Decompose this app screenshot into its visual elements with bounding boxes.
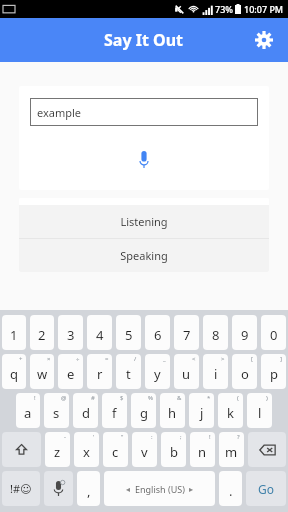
staticText: 73%: [215, 3, 233, 15]
staticText: -: [64, 433, 66, 441]
staticText: :: [151, 433, 153, 441]
staticText: e: [67, 365, 75, 383]
button[interactable]: ×: [30, 354, 54, 389]
button[interactable]: =: [87, 354, 112, 389]
button[interactable]: %: [131, 393, 156, 428]
staticText: ": [121, 433, 124, 441]
button[interactable]: *: [189, 393, 214, 428]
staticText: ◂: [126, 485, 131, 494]
button[interactable]: ): [247, 393, 272, 428]
staticText: @: [61, 394, 67, 402]
staticText: Speaking: [120, 248, 168, 263]
button[interactable]: 2: [30, 315, 54, 350]
button[interactable]: #: [73, 393, 98, 428]
button[interactable]: Listening: [19, 205, 269, 238]
staticText: t: [126, 365, 131, 383]
staticText: v: [141, 443, 148, 461]
button[interactable]: Symbols: [2, 471, 40, 506]
button[interactable]: ÷: [58, 354, 83, 389]
staticText: <: [192, 355, 196, 363]
button[interactable]: $: [102, 393, 127, 428]
staticText: y: [154, 365, 161, 383]
staticText: 3: [67, 326, 75, 344]
staticText: h: [168, 404, 177, 422]
button[interactable]: ,: [77, 471, 100, 506]
staticText: 7: [183, 326, 191, 344]
staticText: English (US): [135, 483, 185, 495]
button[interactable]: ]: [261, 354, 286, 389]
staticText: 1: [10, 326, 18, 344]
staticText: w: [37, 365, 48, 383]
button[interactable]: :: [132, 432, 157, 467]
button[interactable]: 9: [232, 315, 257, 350]
button[interactable]: 0: [261, 315, 286, 350]
button[interactable]: Voice input: [127, 142, 161, 176]
staticText: r: [97, 365, 103, 383]
button[interactable]: .: [219, 471, 242, 506]
staticText: x: [83, 443, 90, 461]
button[interactable]: ◂: [104, 471, 215, 506]
staticText: !#☺: [10, 481, 32, 496]
button[interactable]: !: [16, 393, 40, 428]
button[interactable]: 8: [203, 315, 228, 350]
button[interactable]: >: [203, 354, 228, 389]
button[interactable]: 6: [145, 315, 170, 350]
staticText: >: [221, 355, 225, 363]
staticText: 0: [270, 326, 278, 344]
staticText: !: [34, 394, 36, 402]
button[interactable]: !: [190, 432, 215, 467]
staticText: c: [112, 443, 119, 461]
button[interactable]: Shift: [2, 432, 41, 467]
button[interactable]: -: [45, 432, 70, 467]
staticText: 4: [96, 326, 104, 344]
button[interactable]: example: [30, 98, 258, 126]
button[interactable]: ?: [219, 432, 244, 467]
button[interactable]: 7: [174, 315, 199, 350]
staticText: .: [229, 482, 233, 500]
staticText: 6: [154, 326, 162, 344]
button[interactable]: ": [103, 432, 128, 467]
button[interactable]: [: [232, 354, 257, 389]
staticText: z: [54, 443, 61, 461]
button[interactable]: 5: [116, 315, 141, 350]
staticText: l: [258, 404, 262, 422]
staticText: =: [105, 355, 109, 363]
staticText: j: [200, 404, 204, 422]
button[interactable]: Speaking: [19, 239, 269, 272]
staticText: s: [53, 404, 60, 422]
button[interactable]: Settings: [248, 24, 280, 56]
button[interactable]: 4: [87, 315, 112, 350]
button[interactable]: (: [218, 393, 243, 428]
staticText: b: [170, 443, 178, 461]
button[interactable]: +: [2, 354, 26, 389]
button[interactable]: Voice input: [44, 471, 73, 506]
staticText: example: [37, 105, 82, 120]
button[interactable]: 3: [58, 315, 83, 350]
staticText: [: [251, 355, 253, 363]
staticText: #: [91, 394, 95, 402]
staticText: ): [266, 394, 268, 402]
button[interactable]: @: [44, 393, 69, 428]
staticText: m: [225, 443, 238, 461]
button[interactable]: &: [160, 393, 185, 428]
staticText: Say It Out: [104, 29, 184, 51]
staticText: /: [134, 355, 137, 363]
staticText: ': [93, 433, 95, 441]
staticText: f: [112, 404, 117, 422]
staticText: a: [24, 404, 32, 422]
button[interactable]: _: [145, 354, 170, 389]
button[interactable]: <: [174, 354, 199, 389]
staticText: 5: [125, 326, 133, 344]
button[interactable]: 1: [2, 315, 26, 350]
staticText: 10:07 PM: [244, 3, 284, 15]
staticText: u: [182, 365, 191, 383]
staticText: !: [209, 433, 211, 441]
button[interactable]: Backspace: [248, 432, 286, 467]
staticText: 9: [241, 326, 249, 344]
button[interactable]: Go: [246, 471, 286, 506]
button[interactable]: ': [74, 432, 99, 467]
staticText: *: [207, 394, 211, 402]
button[interactable]: /: [116, 354, 141, 389]
staticText: p: [270, 365, 278, 383]
button[interactable]: ;: [161, 432, 186, 467]
